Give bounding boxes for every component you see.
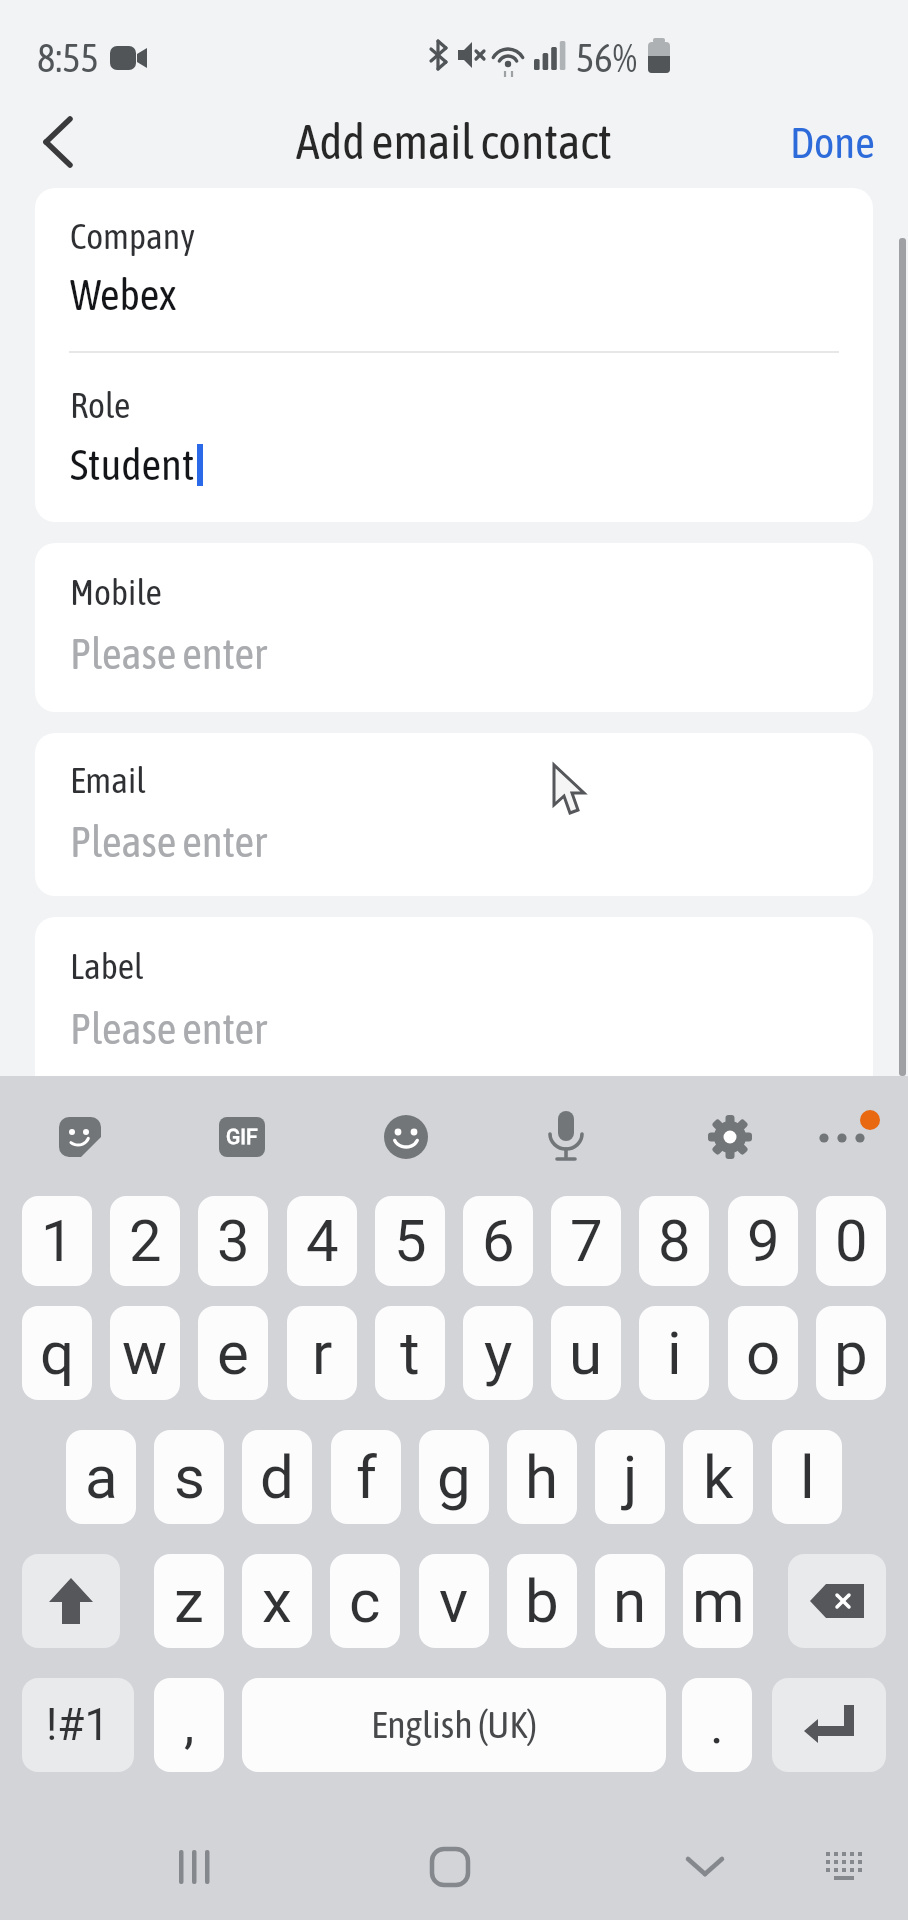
staticText: Add email contact	[296, 114, 612, 169]
staticText: s	[174, 1442, 205, 1512]
button[interactable]: ,	[154, 1678, 224, 1772]
button[interactable]: b	[507, 1554, 577, 1648]
staticText: Please enter	[70, 629, 267, 678]
staticText: t	[400, 1318, 420, 1388]
staticText: r	[312, 1318, 333, 1388]
button[interactable]: .	[682, 1678, 752, 1772]
button[interactable]: Mobile	[35, 543, 873, 712]
button[interactable]: p	[816, 1306, 886, 1400]
staticText: b	[525, 1566, 559, 1636]
button[interactable]: g	[419, 1430, 489, 1524]
staticText: k	[703, 1442, 734, 1512]
button[interactable]: s	[154, 1430, 224, 1524]
button[interactable]: q	[22, 1306, 92, 1400]
button[interactable]: i	[639, 1306, 709, 1400]
staticText: GIF	[226, 1125, 258, 1150]
staticText: j	[623, 1442, 638, 1512]
button[interactable]: j	[595, 1430, 665, 1524]
staticText: o	[746, 1318, 781, 1388]
button[interactable]: u	[551, 1306, 621, 1400]
button[interactable]: 1	[22, 1196, 92, 1286]
button[interactable]: GIF	[212, 1107, 272, 1167]
staticText: 56%	[576, 36, 637, 81]
staticText: Email	[70, 759, 146, 800]
button[interactable]: v	[419, 1554, 489, 1648]
staticText: 7	[570, 1207, 603, 1275]
staticText: 8:55	[37, 36, 99, 81]
button[interactable]: e	[198, 1306, 268, 1400]
button[interactable]: h	[507, 1430, 577, 1524]
staticText: ,	[184, 1695, 195, 1756]
button[interactable]: 4	[287, 1196, 357, 1286]
staticText: n	[613, 1566, 647, 1636]
button[interactable]	[22, 1554, 120, 1648]
button[interactable]	[700, 1107, 760, 1167]
button[interactable]: m	[683, 1554, 753, 1648]
button[interactable]: f	[331, 1430, 401, 1524]
staticText: i	[667, 1318, 682, 1388]
button[interactable]: k	[683, 1430, 753, 1524]
button[interactable]	[788, 1554, 886, 1648]
button[interactable]	[160, 1832, 230, 1902]
staticText: Label	[70, 945, 144, 986]
button[interactable]: 6	[463, 1196, 533, 1286]
button[interactable]	[50, 1107, 110, 1167]
button[interactable]: c	[330, 1554, 400, 1648]
staticText: q	[40, 1318, 75, 1388]
staticText: e	[217, 1318, 249, 1388]
button[interactable]: x	[242, 1554, 312, 1648]
staticText: Role	[70, 384, 131, 425]
staticText: c	[349, 1566, 381, 1636]
staticText: 2	[129, 1207, 162, 1275]
staticText: 6	[482, 1207, 515, 1275]
staticText: f	[356, 1442, 377, 1512]
staticText: h	[525, 1442, 559, 1512]
button[interactable]: w	[110, 1306, 180, 1400]
staticText: 9	[747, 1207, 780, 1275]
button[interactable]: d	[242, 1430, 312, 1524]
button[interactable]: 8	[639, 1196, 709, 1286]
button[interactable]	[376, 1107, 436, 1167]
staticText: 8	[658, 1207, 691, 1275]
button[interactable]: l	[772, 1430, 842, 1524]
button[interactable]: y	[463, 1306, 533, 1400]
button[interactable]: 9	[728, 1196, 798, 1286]
button[interactable]: 7	[551, 1196, 621, 1286]
staticText: 1	[41, 1207, 74, 1275]
button[interactable]	[415, 1832, 485, 1902]
button[interactable]	[806, 1107, 886, 1167]
staticText: x	[262, 1566, 292, 1636]
staticText: w	[122, 1318, 168, 1388]
staticText: 5	[394, 1207, 427, 1275]
button[interactable]	[810, 1832, 880, 1902]
button[interactable]: Done	[766, 108, 898, 176]
staticText: !#1	[46, 1699, 110, 1751]
staticText: Mobile	[70, 571, 162, 612]
button[interactable]: 2	[110, 1196, 180, 1286]
button[interactable]	[670, 1832, 740, 1902]
button[interactable]: 5	[375, 1196, 445, 1286]
button[interactable]: o	[728, 1306, 798, 1400]
staticText: a	[85, 1442, 118, 1512]
button[interactable]	[536, 1107, 596, 1167]
button[interactable]: Email	[35, 733, 873, 896]
button[interactable]: r	[287, 1306, 357, 1400]
button[interactable]: Label	[35, 917, 873, 1117]
button[interactable]: a	[66, 1430, 136, 1524]
button[interactable]	[772, 1678, 886, 1772]
button[interactable]: English (UK)	[242, 1678, 666, 1772]
staticText: 3	[217, 1207, 250, 1275]
button[interactable]: t	[375, 1306, 445, 1400]
button[interactable]: 3	[198, 1196, 268, 1286]
staticText: Please enter	[70, 1004, 267, 1053]
staticText: z	[174, 1566, 204, 1636]
staticText: g	[437, 1442, 471, 1512]
staticText: p	[834, 1318, 868, 1388]
button[interactable]: Company	[35, 188, 873, 522]
button[interactable]: !#1	[22, 1678, 134, 1772]
button[interactable]: n	[595, 1554, 665, 1648]
button[interactable]	[22, 106, 94, 178]
button[interactable]: z	[154, 1554, 224, 1648]
staticText: u	[569, 1318, 603, 1388]
button[interactable]: 0	[816, 1196, 886, 1286]
